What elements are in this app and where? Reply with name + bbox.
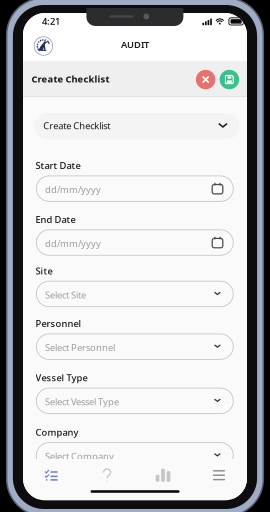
staticText: Select Personnel [45, 341, 115, 354]
button[interactable]: dd/mm/yyyy [36, 176, 233, 201]
staticText: Vessel Type [35, 371, 87, 384]
button[interactable]: Create Checklist [34, 113, 239, 139]
staticText: dd/mm/yyyy [45, 237, 101, 250]
staticText: Start Date [35, 159, 80, 172]
staticText: Site [35, 265, 52, 277]
button[interactable]: Help [79, 463, 135, 487]
staticText: AUDIT [121, 38, 149, 50]
button[interactable]: Profile [33, 36, 53, 56]
staticText: Personnel [35, 317, 81, 330]
staticText: dd/mm/yyyy [45, 183, 101, 196]
staticText: Select Site [45, 289, 86, 301]
button[interactable]: Select Vessel Type [36, 388, 233, 414]
staticText: Create Checklist [43, 119, 110, 132]
button[interactable]: dd/mm/yyyy [36, 230, 233, 255]
button[interactable]: Checklists [23, 463, 79, 487]
button[interactable]: Save [220, 70, 239, 89]
button[interactable]: Select Site [36, 281, 233, 307]
staticText: Select Company [45, 450, 114, 462]
staticText: 4:21 [42, 15, 60, 27]
staticText: End Date [35, 213, 75, 226]
button[interactable]: Cancel [196, 70, 215, 89]
button[interactable]: Reports [135, 463, 191, 487]
button[interactable]: Select Personnel [36, 334, 233, 359]
staticText: Company [35, 426, 78, 438]
staticText: Select Vessel Type [45, 395, 119, 408]
staticText: Create Checklist [32, 73, 110, 85]
button[interactable]: Select Company [36, 443, 233, 468]
button[interactable]: Menu [191, 463, 247, 487]
